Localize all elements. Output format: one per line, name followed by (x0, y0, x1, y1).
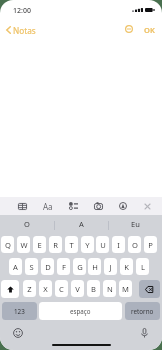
button[interactable]: U (96, 236, 109, 253)
button[interactable]: A (9, 258, 22, 275)
button[interactable]: V (71, 280, 84, 297)
button[interactable]: L (136, 258, 149, 275)
button[interactable]: Formatacao (40, 197, 56, 215)
staticText: T (69, 240, 74, 250)
staticText: I (117, 240, 120, 250)
staticText: U (100, 240, 106, 250)
button[interactable]: M (119, 280, 132, 297)
button[interactable]: 123 (2, 302, 37, 320)
button[interactable]: X (39, 280, 52, 297)
staticText: J (109, 262, 112, 272)
staticText: O (24, 219, 30, 229)
button[interactable]: Ditado (137, 326, 151, 340)
button[interactable]: I (112, 236, 125, 253)
button[interactable]: Camera (90, 197, 106, 215)
button[interactable]: Q (1, 236, 14, 253)
staticText: A (13, 262, 18, 272)
button[interactable]: D (41, 258, 54, 275)
button[interactable]: F (57, 258, 70, 275)
button[interactable]: C (55, 280, 68, 297)
staticText: W (20, 240, 28, 250)
button[interactable]: Y (81, 236, 94, 253)
button[interactable]: P (144, 236, 157, 253)
staticText: H (92, 262, 98, 272)
staticText: G (77, 262, 83, 272)
button[interactable]: K (120, 258, 133, 275)
button[interactable]: Shift (1, 280, 19, 298)
button[interactable]: Tabela (14, 197, 30, 215)
button[interactable]: W (17, 236, 30, 253)
button[interactable]: N (103, 280, 116, 297)
staticText: M (122, 284, 129, 294)
staticText: X (43, 284, 48, 294)
button[interactable]: Eu (108, 215, 162, 235)
button[interactable]: G (73, 258, 86, 275)
button[interactable]: H (88, 258, 101, 275)
button[interactable]: Fechar (139, 197, 155, 215)
button[interactable]: OK (141, 22, 158, 38)
staticText: A (79, 219, 84, 229)
staticText: K (124, 262, 129, 272)
staticText: 123 (14, 307, 25, 316)
button[interactable]: S (25, 258, 38, 275)
staticText: R (53, 240, 58, 250)
staticText: espaço (70, 307, 91, 315)
button[interactable]: Marcacao (115, 197, 131, 215)
staticText: retorno (131, 307, 154, 316)
staticText: C (59, 284, 64, 294)
staticText: V (75, 284, 80, 294)
staticText: D (45, 262, 51, 272)
button[interactable]: Notas (3, 22, 40, 38)
button[interactable]: Emoji (11, 326, 25, 340)
button[interactable]: Lista de verificacao (65, 197, 81, 215)
staticText: Y (85, 240, 90, 250)
button[interactable]: Z (23, 280, 36, 297)
button[interactable]: retorno (125, 302, 160, 320)
staticText: OK (144, 25, 155, 35)
staticText: Eu (131, 219, 140, 229)
staticText: F (62, 262, 66, 272)
button[interactable]: J (104, 258, 117, 275)
staticText: 12:00 (13, 6, 31, 16)
staticText: L (141, 262, 145, 272)
button[interactable]: T (65, 236, 78, 253)
staticText: P (148, 240, 153, 250)
staticText: N (107, 284, 113, 294)
button[interactable]: Apagar (139, 280, 160, 298)
button[interactable]: Mais (122, 22, 136, 36)
button[interactable]: O (128, 236, 141, 253)
staticText: B (91, 284, 96, 294)
staticText: O (132, 240, 138, 250)
staticText: Notas (13, 25, 36, 36)
staticText: E (37, 240, 42, 250)
button[interactable]: espaço (39, 302, 122, 320)
staticText: Aa (43, 201, 53, 212)
staticText: Z (27, 284, 32, 294)
button[interactable]: R (49, 236, 62, 253)
button[interactable]: O (0, 215, 54, 235)
button[interactable]: B (87, 280, 100, 297)
button[interactable]: E (33, 236, 46, 253)
staticText: S (29, 262, 34, 272)
staticText: Q (5, 240, 11, 250)
button[interactable]: A (54, 215, 108, 235)
